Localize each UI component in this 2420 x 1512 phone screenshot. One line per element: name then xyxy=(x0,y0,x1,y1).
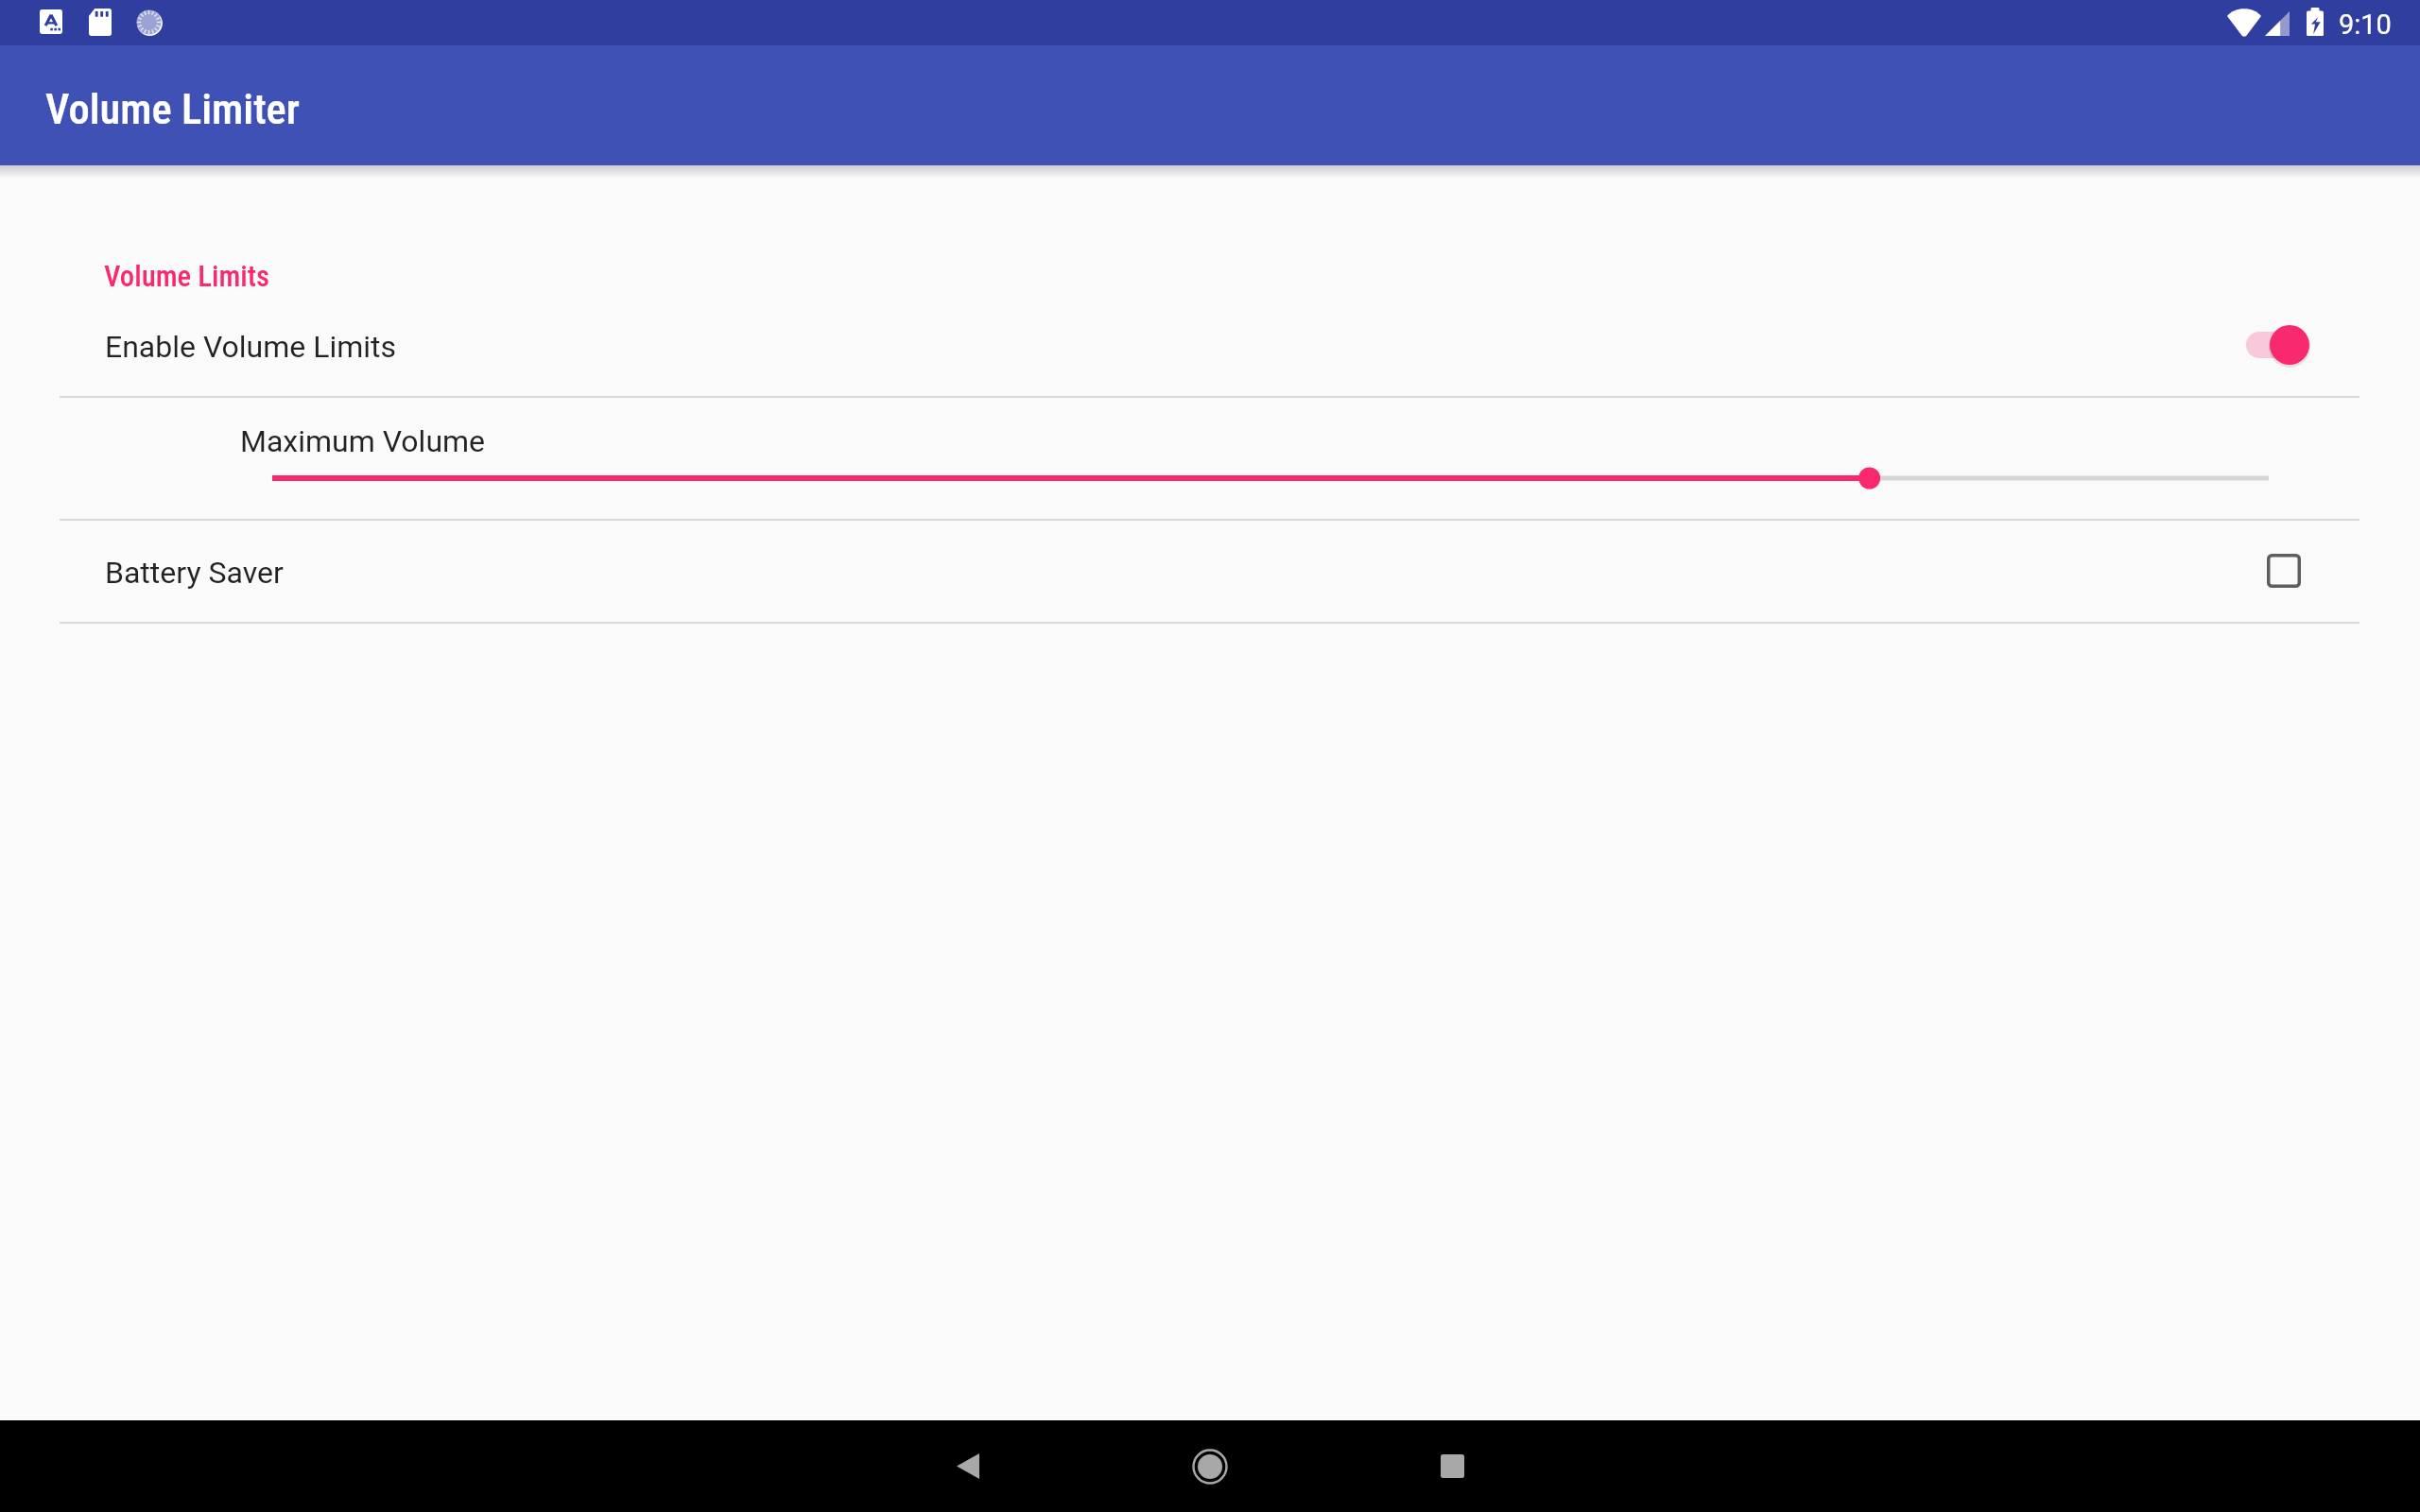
staticText: Battery Saver xyxy=(105,555,284,591)
staticText: Enable Volume Limits xyxy=(105,329,397,365)
button[interactable]: Enable Volume Limits xyxy=(2240,321,2316,369)
staticText: Volume Limiter xyxy=(45,85,300,134)
staticText: 9:10 xyxy=(2339,9,2392,41)
button[interactable]: Home xyxy=(1157,1420,1263,1512)
button[interactable]: Back xyxy=(915,1420,1021,1512)
staticText: Volume Limits xyxy=(104,260,270,294)
button[interactable]: Battery Saver xyxy=(2261,548,2307,593)
staticText: Maximum Volume xyxy=(240,423,486,459)
button[interactable]: Battery Saver xyxy=(0,521,2420,622)
button[interactable]: Maximum Volume xyxy=(0,398,2420,519)
button[interactable]: Enable Volume Limits xyxy=(0,304,2420,396)
button[interactable]: Recent apps xyxy=(1399,1420,1505,1512)
button[interactable]: Maximum Volume xyxy=(272,455,2269,501)
